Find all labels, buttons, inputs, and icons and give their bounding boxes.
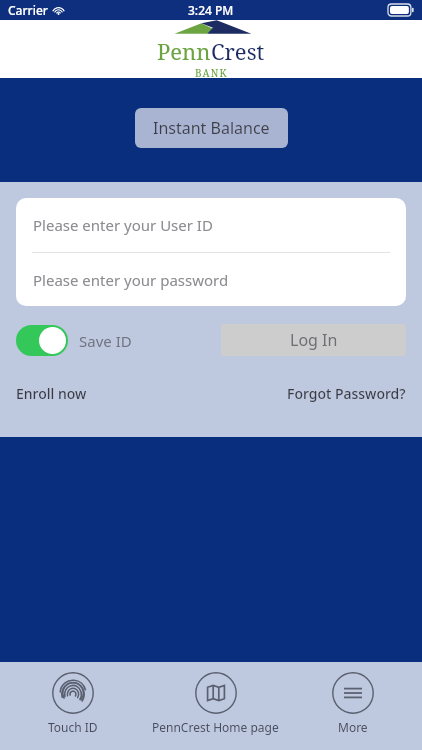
staticText: BANK: [195, 66, 228, 78]
staticText: Penn: [157, 36, 211, 66]
button[interactable]: Log In: [221, 324, 406, 356]
button[interactable]: Please enter your password: [16, 253, 406, 306]
staticText: Save ID: [79, 331, 132, 351]
staticText: Log In: [290, 329, 338, 351]
staticText: More: [338, 719, 368, 735]
button[interactable]: Enroll now: [16, 384, 87, 403]
button[interactable]: Save ID: [16, 325, 132, 356]
button[interactable]: Forgot Password?: [287, 384, 406, 403]
staticText: Please enter your password: [33, 270, 229, 290]
button[interactable]: More: [326, 662, 380, 741]
staticText: Crest: [211, 36, 265, 66]
staticText: Touch ID: [48, 719, 98, 735]
button[interactable]: PennCrest Home page: [146, 662, 285, 741]
button[interactable]: Touch ID: [42, 662, 104, 741]
button[interactable]: Instant Balance: [135, 108, 288, 148]
staticText: PennCrest Home page: [152, 719, 279, 735]
staticText: Forgot Password?: [287, 384, 406, 403]
staticText: Enroll now: [16, 384, 87, 403]
staticText: 3:24 PM: [188, 2, 234, 18]
staticText: Please enter your User ID: [33, 215, 213, 235]
button[interactable]: Please enter your User ID: [16, 198, 406, 252]
staticText: Instant Balance: [153, 117, 270, 139]
staticText: Carrier: [8, 2, 48, 18]
